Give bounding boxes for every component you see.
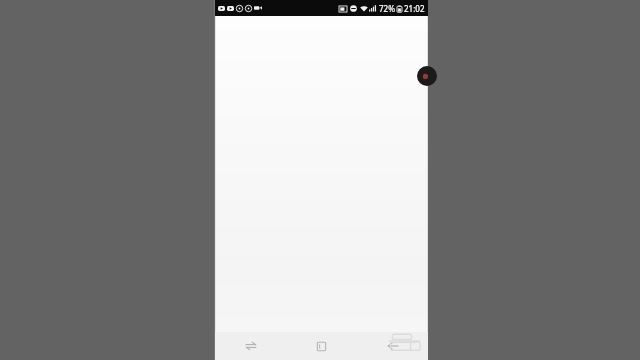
- staticText: 72%: [379, 3, 395, 14]
- button[interactable]: Back: [357, 332, 428, 360]
- button[interactable]: Recent apps: [215, 332, 286, 360]
- staticText: 21:02: [404, 3, 425, 14]
- button[interactable]: Home: [286, 332, 357, 360]
- button[interactable]: Floating bubble: [417, 66, 437, 86]
